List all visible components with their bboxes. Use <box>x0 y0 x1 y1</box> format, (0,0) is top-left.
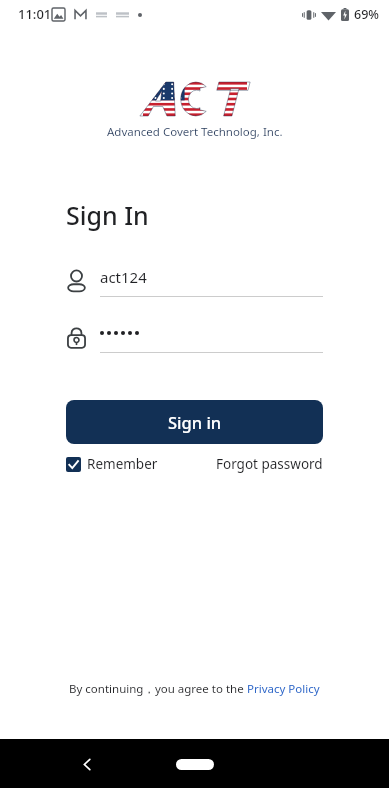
staticText: Sign In <box>66 198 149 232</box>
button[interactable]: Remember <box>66 455 158 473</box>
button[interactable] <box>62 320 323 353</box>
button[interactable]: act124 <box>62 264 323 297</box>
button[interactable]: Forgot password <box>216 455 323 473</box>
staticText: 11:01 <box>18 5 52 23</box>
staticText: Privacy Policy <box>247 681 320 697</box>
staticText: act124 <box>100 267 147 287</box>
button[interactable]: Privacy Policy <box>247 681 320 697</box>
staticText: By continuing，you agree to the <box>69 681 247 697</box>
staticText: Sign in <box>168 411 222 433</box>
staticText: Advanced Covert Technolog, Inc. <box>107 124 283 140</box>
button[interactable]: Home <box>168 749 222 779</box>
button[interactable]: Back <box>72 749 102 779</box>
button[interactable]: Sign in <box>66 400 323 444</box>
staticText: 69% <box>354 6 379 23</box>
staticText: Remember <box>87 455 158 473</box>
staticText: Forgot password <box>216 455 323 473</box>
